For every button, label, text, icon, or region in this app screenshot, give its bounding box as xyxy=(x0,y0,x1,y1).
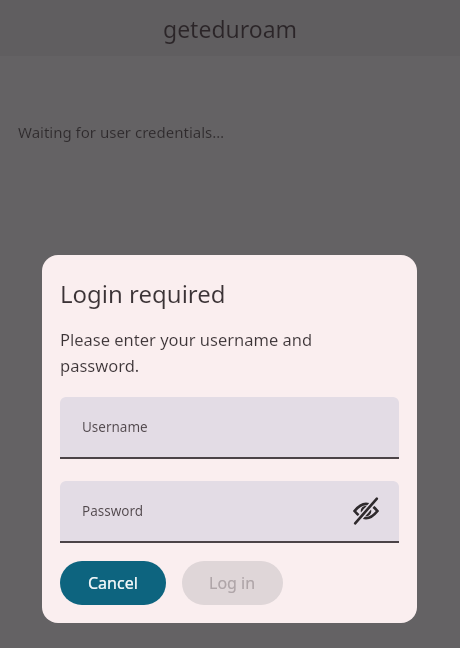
button[interactable]: Username xyxy=(60,397,399,457)
staticText: Login required xyxy=(60,277,226,310)
staticText: Password xyxy=(82,502,144,520)
staticText: Cancel xyxy=(88,572,138,594)
button[interactable]: Cancel xyxy=(60,561,166,605)
button[interactable]: Show password xyxy=(349,494,383,528)
staticText: Please enter your username and password. xyxy=(60,328,313,377)
staticText: geteduroam xyxy=(163,13,298,44)
staticText: Username xyxy=(82,418,148,436)
staticText: Log in xyxy=(209,572,256,594)
staticText: Waiting for user credentials… xyxy=(18,122,225,142)
button[interactable]: Password xyxy=(60,481,399,541)
button[interactable]: Log in xyxy=(182,561,283,605)
